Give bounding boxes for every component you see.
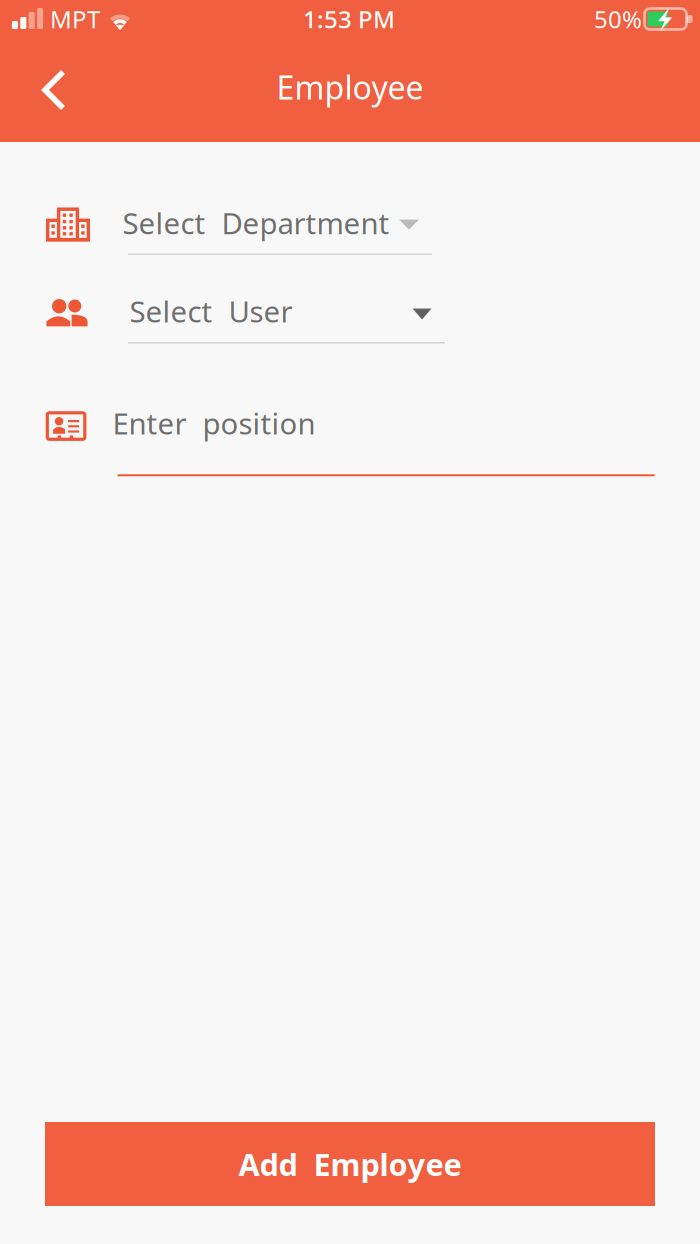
button[interactable]: Back <box>23 53 85 127</box>
staticText: Select User <box>129 291 292 330</box>
staticText: 50% <box>594 3 642 35</box>
button[interactable]: Enter position <box>118 389 655 485</box>
staticText: 1:53 PM <box>303 3 395 35</box>
button[interactable]: Select User <box>128 281 445 351</box>
staticText: Select Department <box>122 203 389 242</box>
button[interactable]: Add Employee <box>45 1122 655 1206</box>
staticText: Employee <box>276 66 423 108</box>
staticText: Add Employee <box>238 1144 461 1184</box>
button[interactable]: Select Department <box>128 192 432 262</box>
staticText: Enter position <box>112 403 315 442</box>
staticText: MPT <box>50 3 100 35</box>
